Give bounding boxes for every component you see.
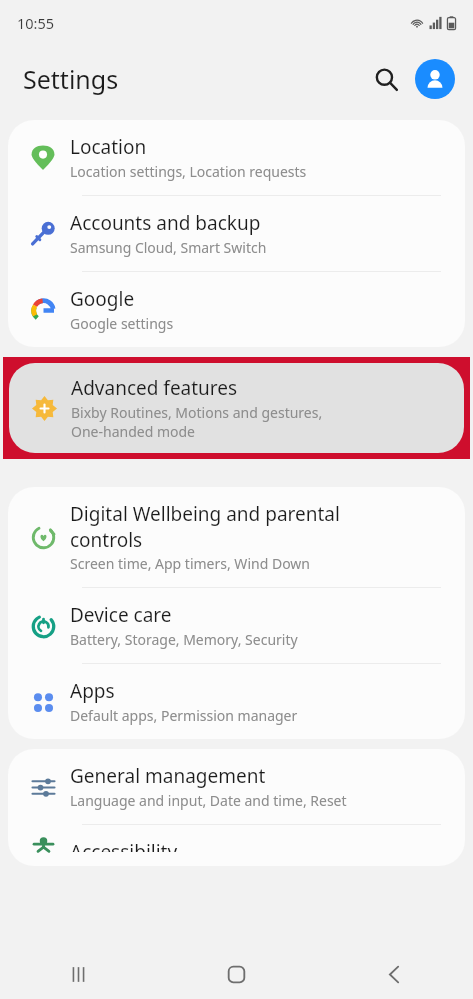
button[interactable]: Advanced features — [9, 363, 464, 453]
staticText: Settings — [23, 62, 119, 96]
button[interactable]: Advanced features — [9, 363, 464, 453]
button[interactable]: Accounts and backup — [8, 196, 465, 271]
button[interactable]: Home — [157, 950, 315, 999]
button[interactable]: Recents — [0, 950, 157, 999]
staticText: Bixby Routines, Motions and gestures, On… — [71, 403, 323, 441]
staticText: Samsung Cloud, Smart Switch — [70, 238, 267, 257]
staticText: Google settings — [70, 314, 174, 333]
button[interactable]: Digital Wellbeing and parental controls — [8, 487, 465, 587]
button[interactable]: Apps — [8, 664, 465, 739]
button[interactable]: Accessibility — [8, 825, 465, 866]
button[interactable]: Location — [8, 120, 465, 195]
staticText: Battery, Storage, Memory, Security — [70, 630, 298, 649]
staticText: Apps — [70, 678, 115, 704]
button[interactable]: Search — [363, 56, 409, 102]
staticText: Device care — [70, 602, 172, 628]
staticText: General management — [70, 763, 266, 789]
staticText: Accessibility — [70, 839, 178, 852]
staticText: Digital Wellbeing and parental controls — [70, 501, 340, 552]
staticText: Screen time, App timers, Wind Down — [70, 554, 310, 573]
staticText: Default apps, Permission manager — [70, 706, 298, 725]
staticText: Google — [70, 286, 135, 312]
staticText: 10:55 — [17, 13, 55, 33]
button[interactable]: Google — [8, 272, 465, 347]
button[interactable]: Back — [315, 950, 473, 999]
button[interactable]: General management — [8, 749, 465, 824]
staticText: Location settings, Location requests — [70, 162, 307, 181]
staticText: Location — [70, 134, 147, 160]
staticText: Language and input, Date and time, Reset — [70, 791, 347, 810]
staticText: Accounts and backup — [70, 210, 261, 236]
button[interactable]: Device care — [8, 588, 465, 663]
button[interactable]: Account — [415, 59, 455, 99]
staticText: Advanced features — [71, 375, 238, 401]
